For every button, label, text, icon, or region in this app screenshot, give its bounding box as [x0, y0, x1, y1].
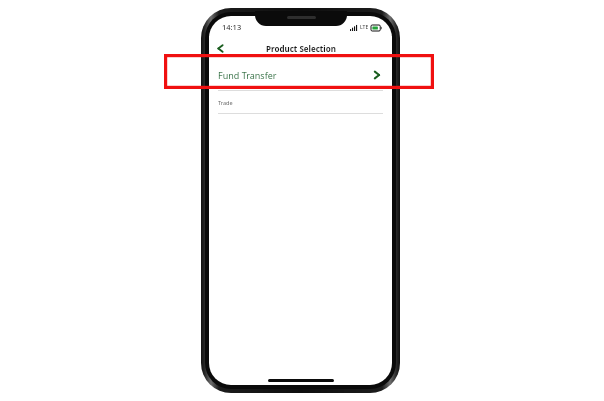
staticText: 14:13: [222, 22, 242, 32]
button[interactable]: Fund Transfer: [209, 60, 392, 90]
button[interactable]: Back: [209, 37, 231, 59]
other: Open Fund Transfer: [371, 69, 383, 81]
staticText: Fund Transfer: [218, 69, 277, 81]
staticText: Product Selection: [266, 43, 336, 54]
button[interactable]: Trade: [209, 91, 392, 113]
staticText: Trade: [218, 99, 233, 106]
staticText: LTE: [360, 24, 369, 31]
